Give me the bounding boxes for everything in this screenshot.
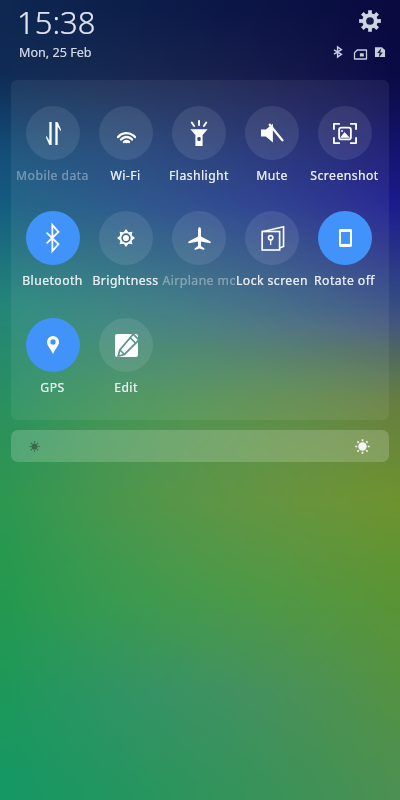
staticText: Airplane mode bbox=[162, 272, 235, 289]
staticText: Brightness bbox=[92, 272, 159, 289]
button[interactable]: Flashlight bbox=[162, 106, 235, 184]
button[interactable]: Mute bbox=[235, 106, 308, 184]
button[interactable]: Lock screen bbox=[235, 211, 308, 289]
button[interactable]: Edit bbox=[89, 318, 162, 396]
button[interactable]: Rotate off bbox=[308, 211, 381, 289]
button[interactable]: Brightness bbox=[11, 430, 389, 462]
button[interactable]: Settings bbox=[355, 6, 385, 36]
staticText: Lock screen bbox=[236, 272, 308, 289]
button[interactable]: Airplane mode bbox=[162, 211, 235, 289]
staticText: GPS bbox=[40, 379, 65, 396]
staticText: 15:38 bbox=[17, 1, 96, 43]
button[interactable]: Brightness bbox=[89, 211, 162, 289]
staticText: Bluetooth bbox=[22, 272, 83, 289]
staticText: Mon, 25 Feb bbox=[19, 44, 92, 61]
staticText: Mobile data bbox=[16, 167, 89, 184]
button[interactable]: Mobile data bbox=[16, 106, 89, 184]
staticText: Wi-Fi bbox=[110, 167, 141, 184]
button[interactable]: GPS bbox=[16, 318, 89, 396]
button[interactable]: Wi-Fi bbox=[89, 106, 162, 184]
button[interactable]: Bluetooth bbox=[16, 211, 89, 289]
staticText: Flashlight bbox=[169, 167, 229, 184]
staticText: Rotate off bbox=[314, 272, 375, 289]
staticText: Edit bbox=[114, 379, 138, 396]
button[interactable]: Screenshot bbox=[308, 106, 381, 184]
staticText: Mute bbox=[256, 167, 288, 184]
staticText: Screenshot bbox=[310, 167, 379, 184]
